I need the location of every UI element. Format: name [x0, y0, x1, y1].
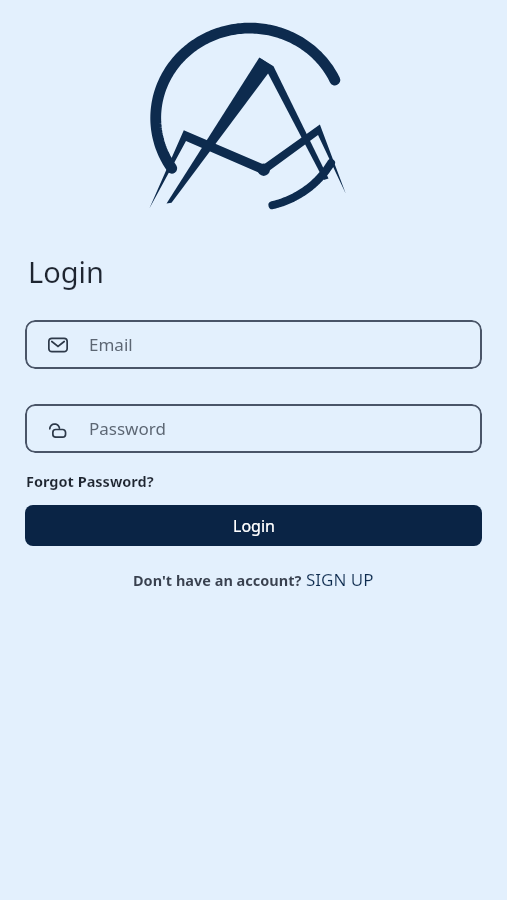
button[interactable]: Password — [25, 404, 482, 453]
other: Logo — [146, 37, 362, 215]
staticText: Password — [89, 417, 166, 440]
button[interactable]: Forgot Password? — [26, 471, 154, 491]
other: Password — [48, 420, 68, 438]
staticText: Don't have an account? — [133, 570, 306, 590]
other: Email — [48, 336, 68, 354]
button[interactable]: Login — [25, 505, 482, 546]
staticText: Login — [233, 515, 275, 537]
staticText: Login — [28, 252, 104, 291]
staticText: Email — [89, 333, 133, 356]
staticText: Forgot Password? — [26, 471, 154, 491]
button[interactable]: Email — [25, 320, 482, 369]
staticText: SIGN UP — [306, 568, 374, 591]
button[interactable]: SIGN UP — [306, 568, 374, 591]
